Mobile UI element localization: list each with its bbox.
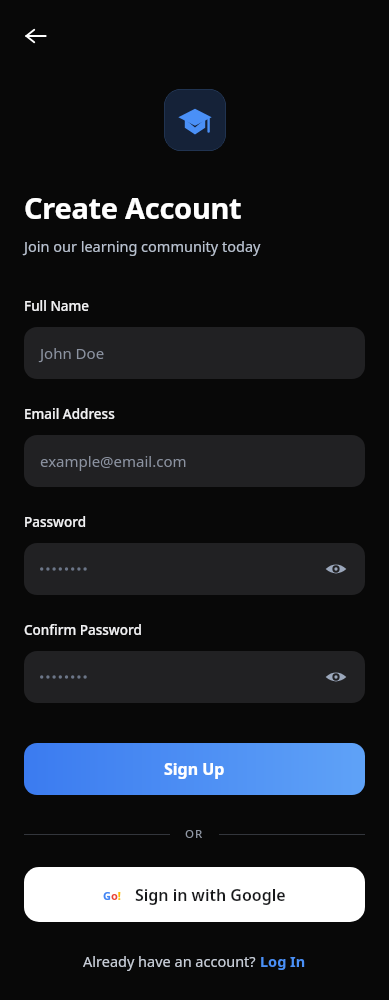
button[interactable]: Log In (260, 951, 306, 971)
button[interactable]: Show password (24, 543, 365, 595)
staticText: Go! (103, 888, 121, 903)
staticText: Confirm Password (24, 621, 142, 639)
button[interactable]: Show password (319, 660, 353, 694)
staticText: Already have an account? (83, 951, 260, 971)
button[interactable]: Sign Up (24, 743, 365, 795)
button[interactable]: Go! (24, 867, 365, 922)
button[interactable]: Show password (24, 651, 365, 703)
staticText: Sign Up (164, 758, 225, 780)
staticText: Create Account (24, 188, 242, 227)
staticText: Full Name (24, 297, 90, 315)
staticText: Sign in with Google (135, 884, 286, 906)
button[interactable]: example@email.com (24, 435, 365, 487)
button[interactable]: Show password (319, 552, 353, 586)
staticText: Log In (260, 951, 306, 971)
staticText: Password (24, 513, 87, 531)
staticText: Email Address (24, 405, 115, 423)
button[interactable]: Back (14, 14, 58, 58)
button[interactable]: John Doe (24, 327, 365, 379)
staticText: Join our learning community today (24, 236, 261, 256)
staticText: example@email.com (40, 451, 187, 471)
staticText: OR (185, 826, 204, 842)
staticText: John Doe (40, 343, 105, 363)
